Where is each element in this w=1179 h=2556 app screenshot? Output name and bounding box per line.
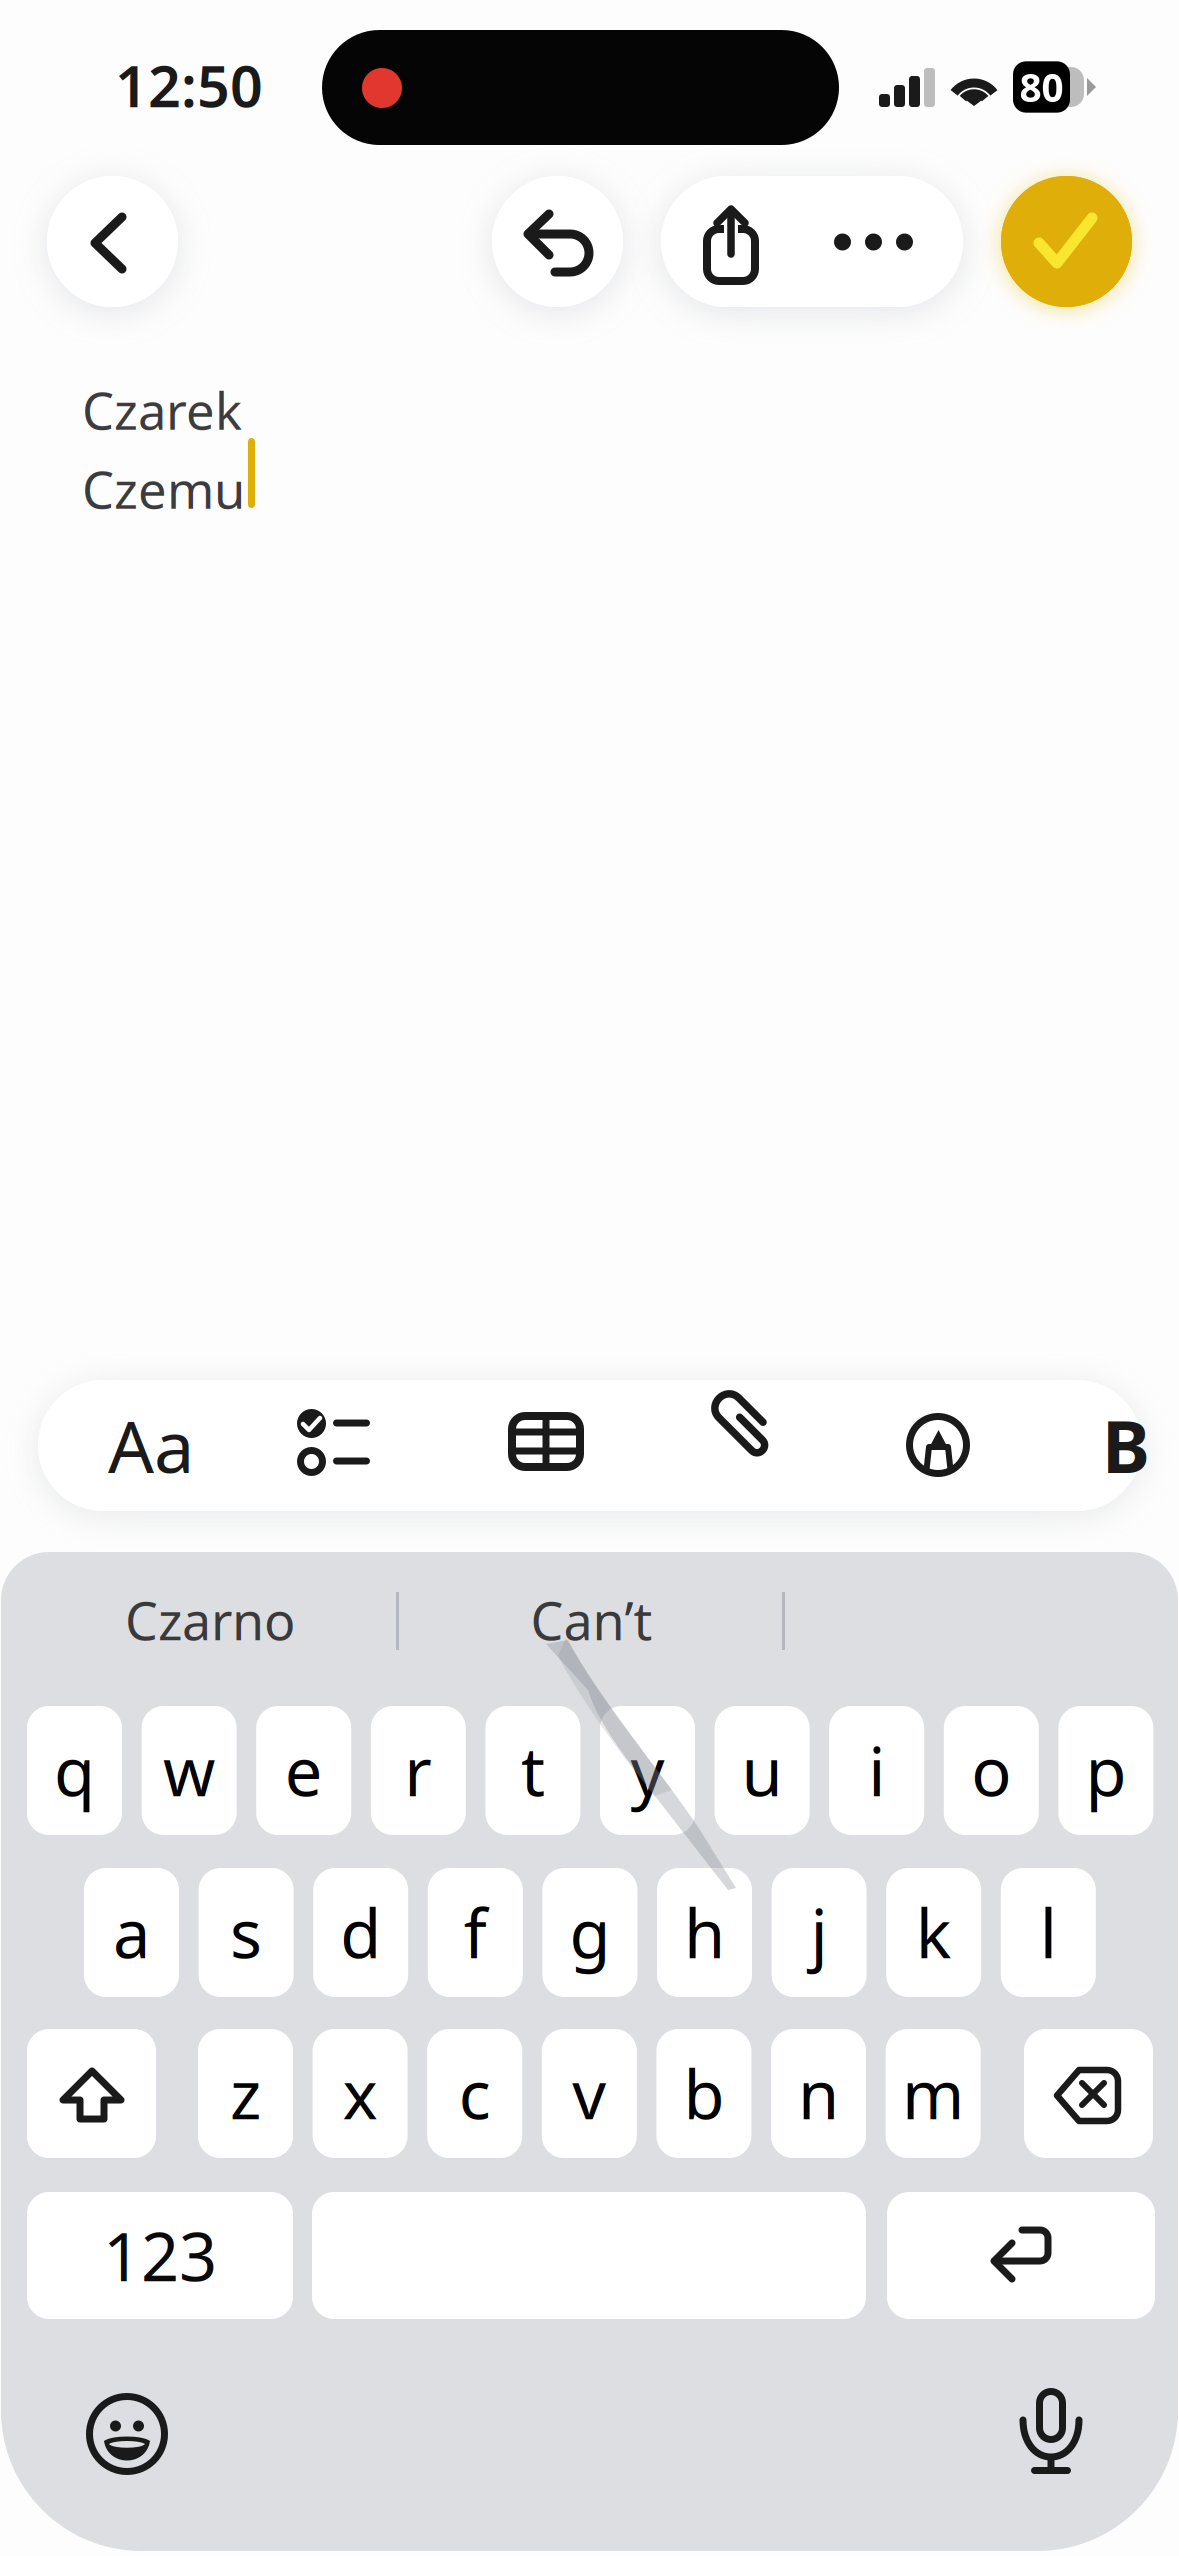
button[interactable]: w [142,1706,237,1835]
staticText: m [902,2049,964,2138]
staticText: f [464,1888,487,1977]
staticText: g [569,1888,610,1977]
button[interactable]: Table [38,1380,1142,1511]
staticText: Czemu [82,455,245,523]
staticText: s [230,1888,262,1977]
button[interactable]: j [772,1868,867,1997]
staticText: j [811,1888,828,1977]
button[interactable]: m [886,2029,981,2158]
button[interactable]: d [313,1868,408,1997]
button[interactable]: p [1058,1706,1153,1835]
button[interactable]: t [485,1706,580,1835]
staticText: Aa [108,1397,194,1493]
staticText: e [285,1726,323,1815]
button[interactable]: k [886,1868,981,1997]
staticText: 80 [1019,61,1063,113]
button[interactable]: Undo [0,0,1179,2556]
button[interactable]: Share [661,176,963,307]
button[interactable]: 123 [0,0,1179,2556]
button[interactable]: Dictate [0,0,1179,2556]
button[interactable]: Bold [38,1380,1142,1511]
button[interactable]: q [27,1706,122,1835]
button[interactable]: Space [0,0,1179,2556]
button[interactable]: y [600,1706,695,1835]
staticText: x [343,2049,378,2138]
staticText: b [683,2049,724,2138]
button[interactable]: g [542,1868,637,1997]
button[interactable]: n [771,2029,866,2158]
button[interactable]: Markup [38,1380,1142,1511]
button[interactable]: a [84,1868,179,1997]
button[interactable]: c [427,2029,522,2158]
button[interactable]: Can’t [0,0,1179,2556]
staticText: 12:50 [115,47,263,123]
button[interactable]: Czarno [0,0,1179,2556]
button[interactable]: Done [0,0,1179,2556]
staticText: i [868,1726,885,1815]
button[interactable]: Back [0,0,1179,2556]
button[interactable]: e [256,1706,351,1835]
staticText: n [798,2049,839,2138]
button[interactable]: Checklist [38,1380,1142,1511]
button[interactable]: Emoji [0,0,1179,2556]
staticText: z [230,2049,261,2138]
staticText: y [630,1726,664,1815]
button[interactable]: More [661,176,963,307]
button[interactable]: Aa [38,1380,1142,1511]
staticText: Czarek [82,376,242,444]
button[interactable]: f [428,1868,523,1997]
button[interactable]: s [199,1868,294,1997]
staticText: r [404,1726,432,1815]
button[interactable]: l [1001,1868,1096,1997]
button[interactable]: i [829,1706,924,1835]
button[interactable]: Return [0,0,1179,2556]
button[interactable]: z [198,2029,293,2158]
staticText: u [742,1726,783,1815]
staticText: 123 [103,2211,217,2300]
button[interactable]: Attach [38,1380,1142,1511]
button[interactable]: x [313,2029,408,2158]
button[interactable]: v [542,2029,637,2158]
button[interactable]: Delete [0,0,1179,2556]
staticText: w [163,1726,215,1815]
staticText: q [54,1726,95,1815]
staticText: h [684,1888,725,1977]
staticText: k [916,1888,952,1977]
staticText: a [113,1888,150,1977]
button[interactable]: o [944,1706,1039,1835]
staticText: t [521,1726,545,1815]
button[interactable]: h [657,1868,752,1997]
button[interactable]: Suggestion [0,0,1179,2556]
staticText: l [1040,1888,1057,1977]
staticText: Czarno [125,1585,295,1655]
staticText: d [340,1888,381,1977]
button[interactable]: r [371,1706,466,1835]
staticText: p [1085,1726,1126,1815]
button[interactable]: u [715,1706,810,1835]
staticText: B [1102,1397,1150,1493]
staticText: v [572,2049,606,2138]
button[interactable]: b [656,2029,751,2158]
button[interactable]: Shift [0,0,1179,2556]
staticText: o [971,1726,1011,1815]
staticText: c [459,2049,491,2138]
staticText: Can’t [530,1585,652,1655]
